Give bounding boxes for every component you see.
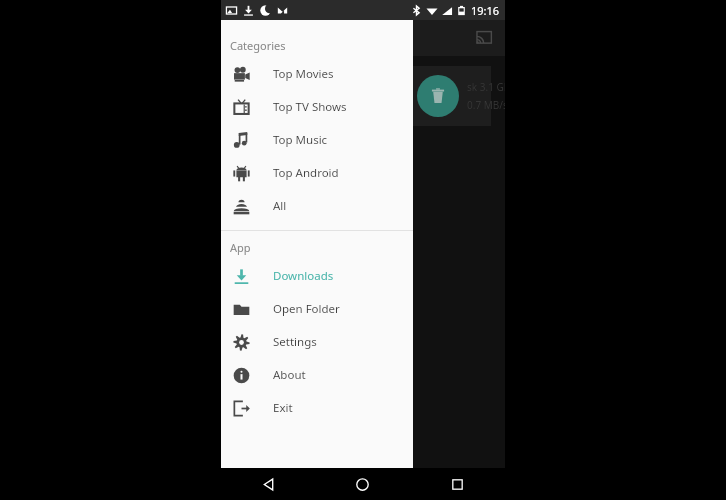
- button[interactable]: Top Music: [221, 123, 413, 156]
- button[interactable]: Exit: [221, 391, 413, 424]
- staticText: Downloads: [273, 268, 334, 284]
- staticText: Exit: [273, 400, 293, 416]
- staticText: Top Movies: [273, 66, 334, 82]
- button[interactable]: Top TV Shows: [221, 90, 413, 123]
- button[interactable]: Top Movies: [221, 57, 413, 90]
- button[interactable]: Recents: [410, 468, 505, 500]
- staticText: App: [230, 240, 251, 255]
- button[interactable]: Home: [315, 468, 410, 500]
- staticText: 19:16: [471, 3, 500, 18]
- button[interactable]: Top Android: [221, 156, 413, 189]
- button[interactable]: Delete: [227, 66, 491, 126]
- button[interactable]: Open Folder: [221, 292, 413, 325]
- staticText: About: [273, 367, 306, 383]
- button[interactable]: Cast: [471, 25, 497, 51]
- button[interactable]: Back: [221, 468, 315, 500]
- staticText: 0.7 MB/s: [467, 98, 508, 112]
- button[interactable]: All: [221, 189, 413, 222]
- staticText: All: [273, 198, 287, 214]
- staticText: Top TV Shows: [273, 99, 347, 115]
- button[interactable]: About: [221, 358, 413, 391]
- staticText: Categories: [230, 38, 286, 53]
- staticText: Top Android: [273, 165, 339, 181]
- staticText: sk 3.1 GB: [467, 80, 511, 94]
- staticText: Top Music: [273, 132, 328, 148]
- staticText: Settings: [273, 334, 317, 350]
- button[interactable]: Settings: [221, 325, 413, 358]
- staticText: Open Folder: [273, 301, 340, 317]
- button[interactable]: Delete: [417, 75, 459, 117]
- button[interactable]: Downloads: [221, 259, 413, 292]
